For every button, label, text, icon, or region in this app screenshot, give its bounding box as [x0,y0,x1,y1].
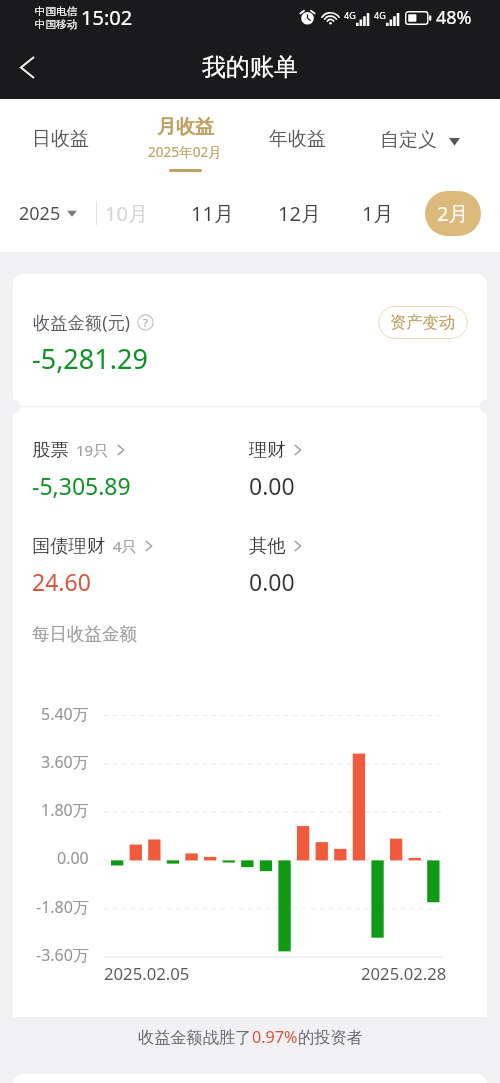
staticText: -5,305.89 [32,470,131,501]
button[interactable]: 10月 [96,191,157,236]
staticText: 2025.02.28 [361,962,447,985]
staticText: 10月 [105,200,148,227]
staticText: 2025 [19,201,61,226]
staticText: 收益金额(元) [33,311,130,335]
staticText: 0.00 [249,566,295,597]
staticText: 日收益 [32,127,89,151]
staticText: 15:02 [81,4,133,31]
staticText: 4G [344,9,356,21]
button[interactable]: 资产变动 [378,306,468,339]
staticText: 1月 [362,200,394,227]
button[interactable]: Help [137,314,154,331]
staticText: 每日收益金额 [32,623,137,645]
staticText: 资产变动 [390,312,456,333]
staticText: 2月 [437,200,469,227]
staticText: 0.00 [249,470,295,501]
staticText: 股票 [32,438,69,461]
staticText: 11月 [191,200,234,227]
staticText: 年收益 [269,127,326,151]
staticText: -3.60万 [36,944,89,966]
button[interactable]: 1月 [353,191,403,236]
staticText: 4只 [113,536,137,556]
button[interactable]: 理财 [249,438,302,501]
staticText: 5.40万 [41,703,89,725]
button[interactable]: 日收益 [19,116,102,162]
staticText: 24.60 [32,566,91,597]
staticText: 0.97% [252,1026,298,1048]
staticText: 19只 [76,440,109,460]
staticText: 国债理财 [32,534,106,557]
button[interactable]: 2025 [15,193,81,234]
button[interactable]: 年收益 [256,116,339,162]
button[interactable]: 其他 [249,534,302,597]
staticText: -5,281.29 [32,340,148,377]
staticText: 48% [436,5,472,30]
staticText: 12月 [278,200,321,227]
button[interactable]: 12月 [269,191,330,236]
button[interactable]: 2月 [425,191,481,236]
staticText: 1.80万 [41,799,89,821]
staticText: 我的账单 [202,52,298,82]
staticText: 自定义 [380,128,437,152]
staticText: 的投资者 [298,1027,363,1047]
button[interactable]: 月收益 [135,113,235,174]
staticText: 月收益 [157,115,214,139]
staticText: 中国电信 [35,5,77,18]
staticText: 收益金额战胜了 [138,1027,252,1047]
staticText: 中国移动 [35,18,77,31]
staticText: ? [143,315,148,330]
staticText: 4G [374,9,386,21]
button[interactable]: 自定义 [367,117,473,163]
staticText: 3.60万 [41,751,89,773]
staticText: 理财 [249,438,286,461]
button[interactable]: 11月 [182,191,243,236]
button[interactable]: Back [6,46,48,88]
button[interactable]: 国债理财 [32,534,153,597]
staticText: 2025.02.05 [104,962,190,985]
staticText: 其他 [249,534,286,557]
staticText: -1.80万 [36,896,89,918]
staticText: 0.00 [57,847,89,869]
staticText: 2025年02月 [148,142,222,161]
button[interactable]: 股票 [32,438,131,501]
